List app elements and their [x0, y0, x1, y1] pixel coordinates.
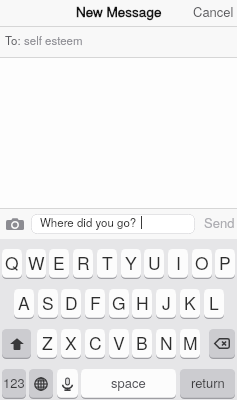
staticText: L — [209, 290, 219, 315]
button[interactable]: return — [180, 369, 235, 399]
staticText: H — [136, 290, 149, 315]
staticText: N — [160, 330, 173, 355]
button[interactable]: Dictation — [57, 369, 78, 399]
button[interactable]: L — [204, 289, 224, 319]
staticText: P — [219, 250, 231, 275]
staticText: Z — [42, 330, 53, 355]
staticText: X — [65, 330, 77, 355]
staticText: C — [89, 330, 102, 355]
button[interactable]: J — [156, 289, 176, 319]
button[interactable]: E — [49, 249, 69, 279]
staticText: R — [77, 250, 90, 275]
staticText: I — [176, 250, 181, 275]
staticText: T — [102, 250, 113, 275]
staticText: space — [111, 373, 146, 392]
staticText: 123 — [3, 373, 25, 392]
staticText: Q — [5, 250, 19, 275]
button[interactable]: T — [97, 249, 117, 279]
staticText: return — [191, 373, 225, 392]
button[interactable]: V — [109, 329, 129, 359]
staticText: V — [113, 330, 125, 355]
button[interactable]: Y — [121, 249, 141, 279]
button[interactable]: Where did you go? — [31, 214, 195, 234]
button[interactable]: Take photo — [5, 217, 24, 230]
button[interactable]: O — [192, 249, 212, 279]
button[interactable]: Backspace — [209, 329, 235, 359]
button[interactable]: X — [61, 329, 81, 359]
button[interactable]: Next keyboard — [29, 369, 53, 399]
button[interactable]: 123 — [2, 369, 26, 399]
button[interactable]: To: — [5, 32, 237, 48]
staticText: M — [183, 330, 198, 355]
button[interactable]: Q — [2, 249, 22, 279]
staticText: D — [65, 290, 78, 315]
button[interactable]: F — [85, 289, 105, 319]
staticText: Cancel — [193, 2, 234, 21]
button[interactable]: R — [73, 249, 93, 279]
staticText: B — [136, 330, 148, 355]
staticText: New Message — [76, 2, 162, 21]
button[interactable]: K — [180, 289, 200, 319]
button[interactable]: G — [109, 289, 129, 319]
staticText: U — [148, 250, 161, 275]
button[interactable]: Z — [37, 329, 57, 359]
button[interactable]: D — [61, 289, 81, 319]
button[interactable]: Cancel — [193, 2, 234, 21]
button[interactable]: B — [132, 329, 152, 359]
button[interactable]: H — [132, 289, 152, 319]
staticText: E — [53, 250, 65, 275]
staticText: Where did you go? — [40, 214, 137, 230]
button[interactable]: S — [38, 289, 58, 319]
button[interactable]: P — [215, 249, 235, 279]
staticText: S — [42, 290, 54, 315]
staticText: G — [112, 290, 126, 315]
staticText: W — [28, 250, 45, 275]
staticText: Y — [125, 250, 137, 275]
staticText: O — [195, 250, 209, 275]
button[interactable]: space — [81, 369, 176, 399]
staticText: self esteem — [24, 32, 83, 48]
staticText: Send — [204, 213, 235, 232]
button[interactable]: U — [144, 249, 164, 279]
button[interactable]: Send — [204, 213, 235, 232]
button[interactable]: N — [156, 329, 176, 359]
staticText: A — [18, 290, 30, 315]
staticText: K — [184, 290, 196, 315]
button[interactable]: M — [180, 329, 200, 359]
staticText: F — [90, 290, 101, 315]
staticText: J — [162, 290, 171, 315]
button[interactable]: A — [14, 289, 34, 319]
button[interactable]: I — [168, 249, 188, 279]
button[interactable]: C — [85, 329, 105, 359]
button[interactable]: W — [26, 249, 46, 279]
staticText: To: — [5, 32, 21, 48]
button[interactable]: Shift — [2, 329, 31, 359]
